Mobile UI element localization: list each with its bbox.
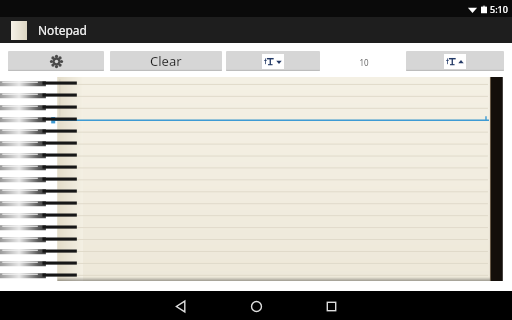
button[interactable]: Decrease font size (226, 51, 320, 71)
button[interactable] (0, 77, 512, 281)
staticText: 10 (359, 57, 369, 68)
button[interactable]: Increase font size (406, 51, 504, 71)
button[interactable]: Back (166, 293, 196, 319)
button[interactable]: Settings (8, 51, 104, 71)
button[interactable]: Home (241, 293, 271, 319)
button[interactable]: Recents (316, 293, 346, 319)
button[interactable]: Clear (110, 51, 222, 71)
staticText: Clear (150, 52, 182, 70)
staticText: 5:10 (490, 3, 508, 15)
staticText: Notepad (38, 22, 87, 38)
